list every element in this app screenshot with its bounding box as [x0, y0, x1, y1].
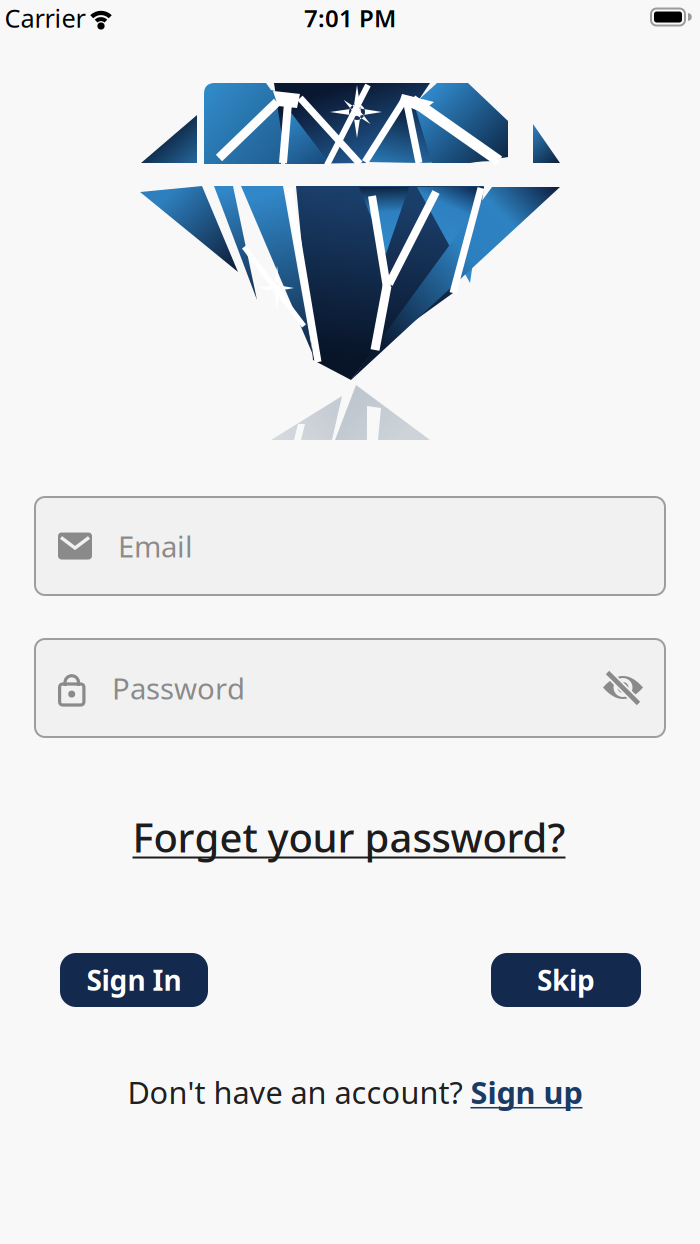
button[interactable]: Sign up — [470, 1072, 582, 1112]
button[interactable]: Show password — [601, 668, 645, 707]
staticText: Email — [118, 526, 193, 565]
button[interactable]: Skip — [491, 953, 641, 1007]
staticText: 7:01 PM — [304, 2, 396, 34]
button[interactable]: Email — [34, 496, 666, 596]
button[interactable]: Password — [34, 638, 666, 738]
staticText: Carrier — [4, 1, 85, 35]
staticText: Skip — [537, 961, 595, 999]
button[interactable]: Sign In — [60, 953, 208, 1007]
staticText: Forget your password? — [132, 810, 565, 863]
staticText: Sign In — [86, 961, 181, 999]
button[interactable]: Forget your password? — [132, 810, 565, 863]
staticText: Don't have an account? — [127, 1072, 462, 1112]
staticText: Sign up — [470, 1072, 582, 1112]
staticText: Password — [112, 668, 245, 707]
